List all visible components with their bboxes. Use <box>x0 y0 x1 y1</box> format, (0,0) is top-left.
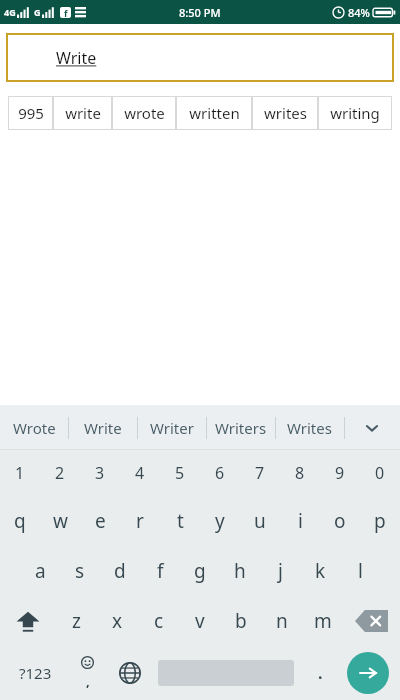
button[interactable]: wrote <box>112 96 176 130</box>
staticText: 4 <box>135 462 145 484</box>
button[interactable]: Enter <box>340 646 396 700</box>
staticText: w <box>53 508 68 534</box>
button[interactable]: b <box>220 596 261 646</box>
button[interactable]: 2 <box>40 450 80 496</box>
button[interactable]: 3 <box>80 450 120 496</box>
button[interactable]: Emoji <box>66 646 108 700</box>
button[interactable]: writes <box>252 96 318 130</box>
button[interactable]: y <box>200 496 240 546</box>
staticText: q <box>14 508 26 534</box>
staticText: Writer <box>150 418 194 438</box>
staticText: 1 <box>15 462 25 484</box>
button[interactable]: 0 <box>360 450 400 496</box>
button[interactable]: Writes <box>275 405 344 450</box>
staticText: Writes <box>287 418 332 438</box>
staticText: e <box>95 508 106 534</box>
button[interactable]: x <box>97 596 138 646</box>
staticText: 4G <box>4 6 16 18</box>
button[interactable]: writing <box>318 96 392 130</box>
button[interactable]: ?123 <box>4 646 66 700</box>
button[interactable]: 4 <box>120 450 160 496</box>
staticText: f <box>157 558 164 584</box>
button[interactable]: s <box>60 546 100 596</box>
button[interactable]: 1 <box>0 450 40 496</box>
button[interactable]: e <box>80 496 120 546</box>
button[interactable]: 7 <box>240 450 280 496</box>
button[interactable]: c <box>138 596 179 646</box>
button[interactable]: 995 <box>8 96 53 130</box>
button[interactable]: t <box>160 496 200 546</box>
button[interactable]: n <box>261 596 302 646</box>
staticText: 0 <box>375 462 385 484</box>
button[interactable]: k <box>300 546 340 596</box>
button[interactable]: d <box>100 546 140 596</box>
button[interactable]: q <box>0 496 40 546</box>
staticText: write <box>65 103 101 123</box>
staticText: 3 <box>95 462 105 484</box>
staticText: f <box>64 7 68 18</box>
button[interactable]: Writers <box>206 405 275 450</box>
button[interactable]: o <box>320 496 360 546</box>
staticText: u <box>254 508 266 534</box>
button[interactable]: g <box>180 546 220 596</box>
staticText: s <box>75 558 85 584</box>
staticText: r <box>136 508 144 534</box>
button[interactable]: 8 <box>280 450 320 496</box>
staticText: p <box>374 508 386 534</box>
button[interactable]: z <box>56 596 97 646</box>
staticText: Writers <box>215 418 267 438</box>
staticText: z <box>72 608 81 634</box>
button[interactable]: r <box>120 496 160 546</box>
button[interactable]: Writer <box>137 405 206 450</box>
staticText: 8 <box>295 462 305 484</box>
staticText: g <box>194 558 206 584</box>
staticText: 8:50 PM <box>179 5 221 20</box>
staticText: Write <box>56 47 97 69</box>
staticText: 6 <box>215 462 225 484</box>
button[interactable]: write <box>53 96 112 130</box>
button[interactable]: Backspace <box>343 596 400 646</box>
button[interactable]: w <box>40 496 80 546</box>
button[interactable]: 6 <box>200 450 240 496</box>
button[interactable]: 5 <box>160 450 200 496</box>
staticText: writing <box>330 103 380 123</box>
button[interactable]: l <box>340 546 380 596</box>
staticText: writes <box>264 103 307 123</box>
staticText: t <box>177 508 184 534</box>
staticText: ?123 <box>19 663 52 683</box>
button[interactable]: m <box>302 596 343 646</box>
staticText: wrote <box>124 103 165 123</box>
button[interactable]: Shift <box>0 596 56 646</box>
button[interactable]: f <box>140 546 180 596</box>
staticText: G <box>34 6 41 18</box>
button[interactable]: u <box>240 496 280 546</box>
button[interactable]: j <box>260 546 300 596</box>
staticText: 84% <box>348 5 370 20</box>
staticText: 2 <box>55 462 65 484</box>
button[interactable]: Write <box>6 33 394 82</box>
staticText: c <box>154 608 164 634</box>
staticText: 9 <box>335 462 345 484</box>
staticText: j <box>278 558 283 584</box>
button[interactable]: written <box>176 96 252 130</box>
button[interactable]: Change language <box>108 646 152 700</box>
button[interactable]: Expand suggestions <box>344 405 400 450</box>
button[interactable]: h <box>220 546 260 596</box>
staticText: l <box>358 558 363 584</box>
staticText: y <box>215 508 225 534</box>
button[interactable]: i <box>280 496 320 546</box>
staticText: b <box>235 608 247 634</box>
button[interactable]: 9 <box>320 450 360 496</box>
button[interactable]: . <box>300 646 340 700</box>
button[interactable]: Wrote <box>0 405 68 450</box>
button[interactable]: v <box>179 596 220 646</box>
staticText: i <box>298 508 303 534</box>
button[interactable]: p <box>360 496 400 546</box>
staticText: d <box>114 558 126 584</box>
staticText: n <box>276 608 288 634</box>
button[interactable]: a <box>20 546 60 596</box>
staticText: h <box>234 558 246 584</box>
button[interactable]: Write <box>68 405 137 450</box>
staticText: m <box>314 608 332 634</box>
